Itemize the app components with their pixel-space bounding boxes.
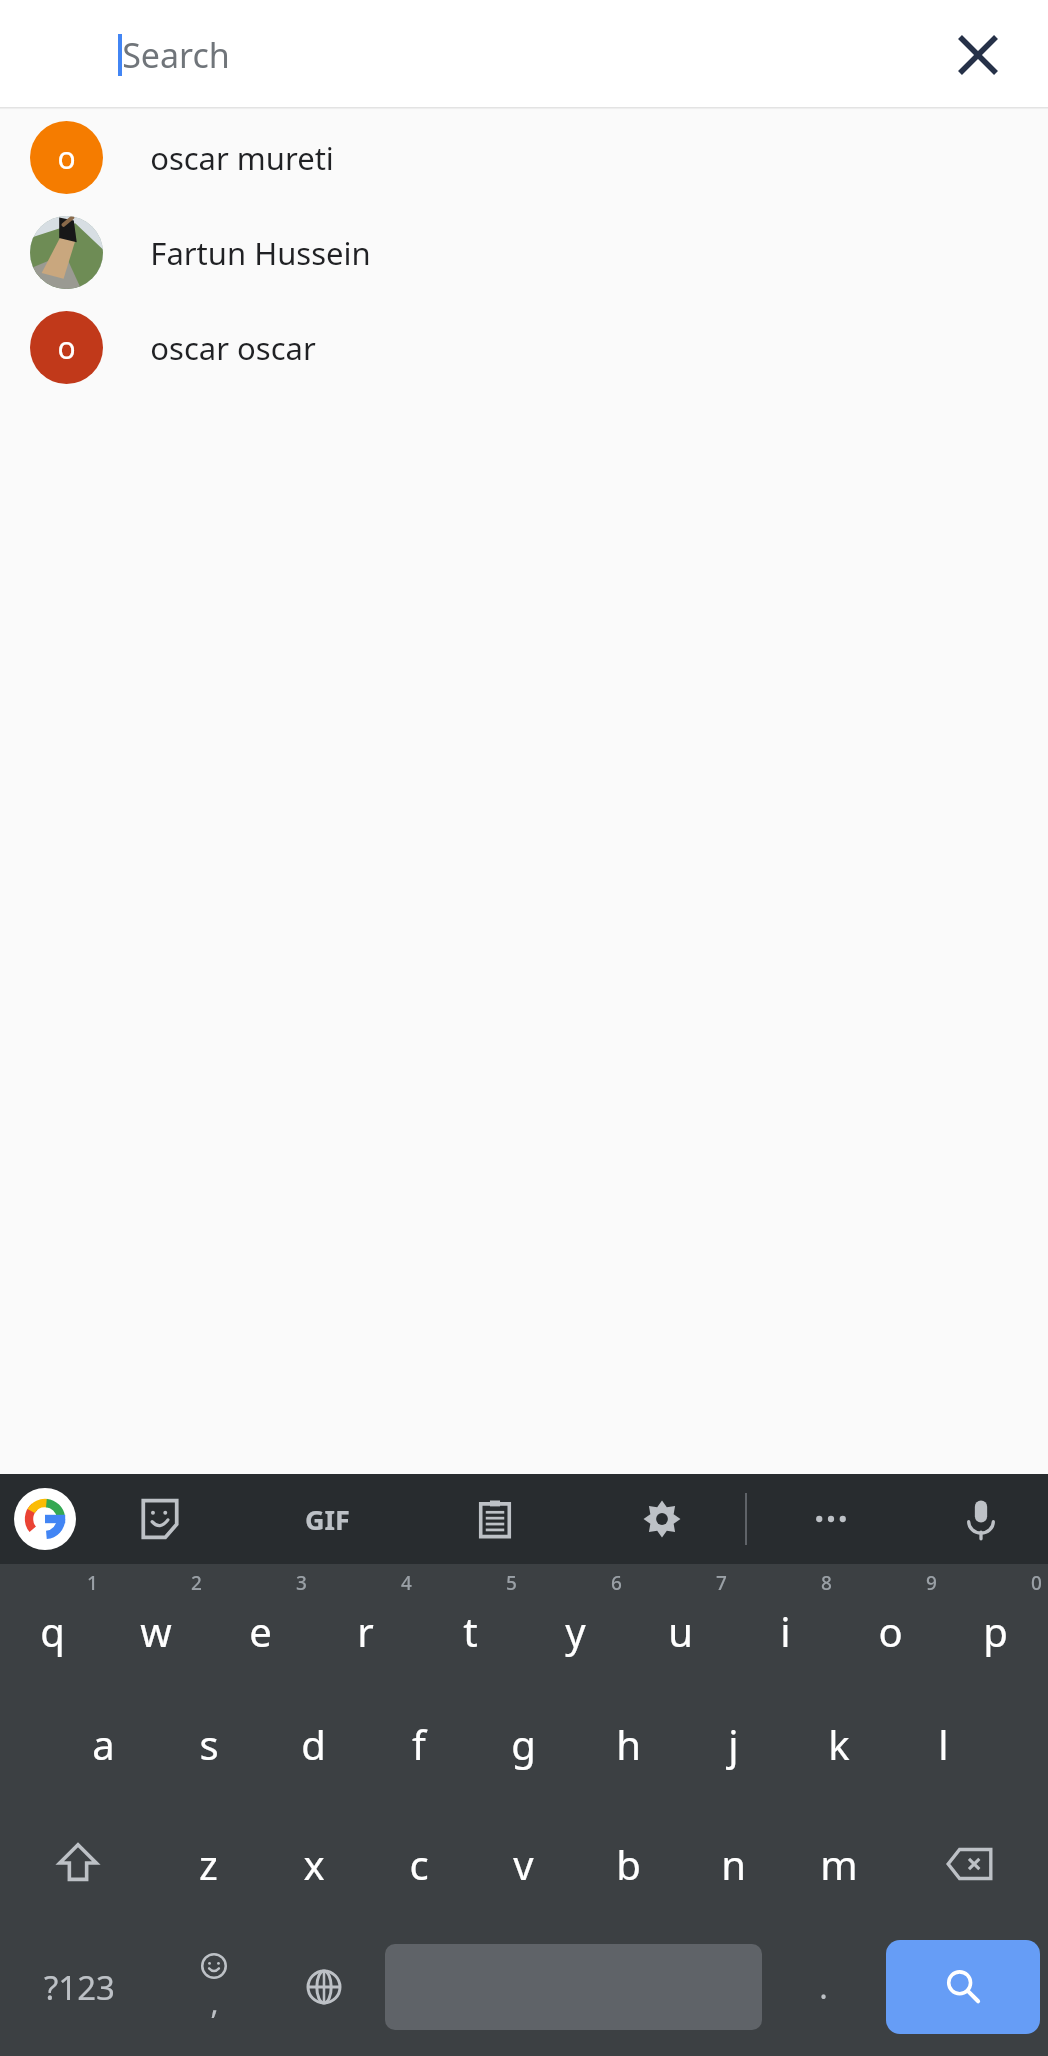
staticText: v: [513, 1837, 534, 1891]
staticText: r: [357, 1604, 374, 1658]
staticText: ?123: [44, 1965, 115, 2010]
staticText: Fartun Hussein: [150, 232, 371, 274]
staticText: GIF: [305, 1501, 350, 1538]
button[interactable]: Backspace: [891, 1804, 1048, 1924]
staticText: 8: [821, 1570, 832, 1596]
button[interactable]: Emoji and comma: [159, 1924, 269, 2050]
button[interactable]: j: [681, 1684, 786, 1804]
button[interactable]: z: [156, 1804, 261, 1924]
button[interactable]: k: [786, 1684, 891, 1804]
staticText: z: [199, 1837, 218, 1891]
staticText: i: [780, 1604, 791, 1658]
staticText: s: [199, 1717, 219, 1771]
button[interactable]: b: [576, 1804, 681, 1924]
button[interactable]: o: [0, 300, 1048, 395]
button[interactable]: Stickers: [76, 1474, 244, 1564]
button[interactable]: f: [366, 1684, 471, 1804]
staticText: 1: [87, 1570, 98, 1596]
staticText: y: [565, 1604, 586, 1658]
button[interactable]: Google: [14, 1488, 76, 1550]
staticText: ,: [210, 1982, 219, 2023]
staticText: q: [40, 1604, 65, 1658]
button[interactable]: 2: [104, 1564, 208, 1684]
staticText: d: [301, 1717, 326, 1771]
button[interactable]: 8: [733, 1564, 838, 1684]
staticText: .: [819, 1965, 828, 2009]
button[interactable]: Shift: [0, 1804, 156, 1924]
staticText: h: [616, 1717, 641, 1771]
button[interactable]: .: [768, 1924, 878, 2050]
staticText: m: [820, 1837, 858, 1891]
button[interactable]: Clipboard: [411, 1474, 578, 1564]
button[interactable]: 4: [313, 1564, 418, 1684]
button[interactable]: Fartun Hussein: [0, 205, 1048, 300]
staticText: l: [938, 1717, 949, 1771]
staticText: 7: [716, 1570, 727, 1596]
staticText: 6: [611, 1570, 622, 1596]
button[interactable]: Settings: [578, 1474, 745, 1564]
button[interactable]: x: [261, 1804, 366, 1924]
staticText: 4: [401, 1570, 412, 1596]
button[interactable]: 1: [0, 1564, 104, 1684]
staticText: 0: [1031, 1570, 1042, 1596]
staticText: c: [409, 1837, 429, 1891]
button[interactable]: 6: [523, 1564, 628, 1684]
button[interactable]: d: [261, 1684, 366, 1804]
button[interactable]: Change language: [269, 1924, 379, 2050]
staticText: o: [57, 137, 76, 178]
button[interactable]: Search: [878, 1924, 1048, 2050]
staticText: o: [878, 1604, 903, 1658]
staticText: 3: [296, 1570, 307, 1596]
button[interactable]: v: [471, 1804, 576, 1924]
button[interactable]: 3: [208, 1564, 313, 1684]
staticText: w: [140, 1604, 172, 1658]
button[interactable]: a: [51, 1684, 156, 1804]
button[interactable]: 5: [418, 1564, 523, 1684]
button[interactable]: l: [891, 1684, 996, 1804]
staticText: 2: [191, 1570, 202, 1596]
staticText: e: [249, 1604, 272, 1658]
staticText: p: [983, 1604, 1008, 1658]
staticText: 5: [506, 1570, 517, 1596]
staticText: a: [92, 1717, 115, 1771]
staticText: f: [412, 1717, 426, 1771]
staticText: k: [828, 1717, 850, 1771]
staticText: t: [463, 1604, 478, 1658]
staticText: x: [303, 1837, 325, 1891]
button[interactable]: 0: [943, 1564, 1048, 1684]
staticText: o: [57, 327, 76, 368]
button[interactable]: ?123: [0, 1924, 159, 2050]
staticText: 9: [926, 1570, 937, 1596]
button[interactable]: c: [366, 1804, 471, 1924]
staticText: oscar oscar: [150, 327, 316, 369]
staticText: oscar mureti: [150, 137, 334, 179]
staticText: g: [511, 1717, 536, 1771]
button[interactable]: g: [471, 1684, 576, 1804]
button[interactable]: 7: [628, 1564, 733, 1684]
staticText: b: [616, 1837, 641, 1891]
button[interactable]: n: [681, 1804, 786, 1924]
button[interactable]: 9: [838, 1564, 943, 1684]
staticText: j: [728, 1717, 739, 1771]
button[interactable]: GIF: [244, 1474, 411, 1564]
button[interactable]: h: [576, 1684, 681, 1804]
button[interactable]: Voice input: [914, 1474, 1048, 1564]
button[interactable]: Close search: [938, 15, 1018, 95]
staticText: n: [721, 1837, 746, 1891]
button[interactable]: s: [156, 1684, 261, 1804]
button[interactable]: m: [786, 1804, 891, 1924]
button[interactable]: Space: [379, 1924, 768, 2050]
staticText: Search: [122, 32, 230, 78]
button[interactable]: More options: [747, 1474, 914, 1564]
button[interactable]: o: [0, 110, 1048, 205]
staticText: u: [668, 1604, 693, 1658]
